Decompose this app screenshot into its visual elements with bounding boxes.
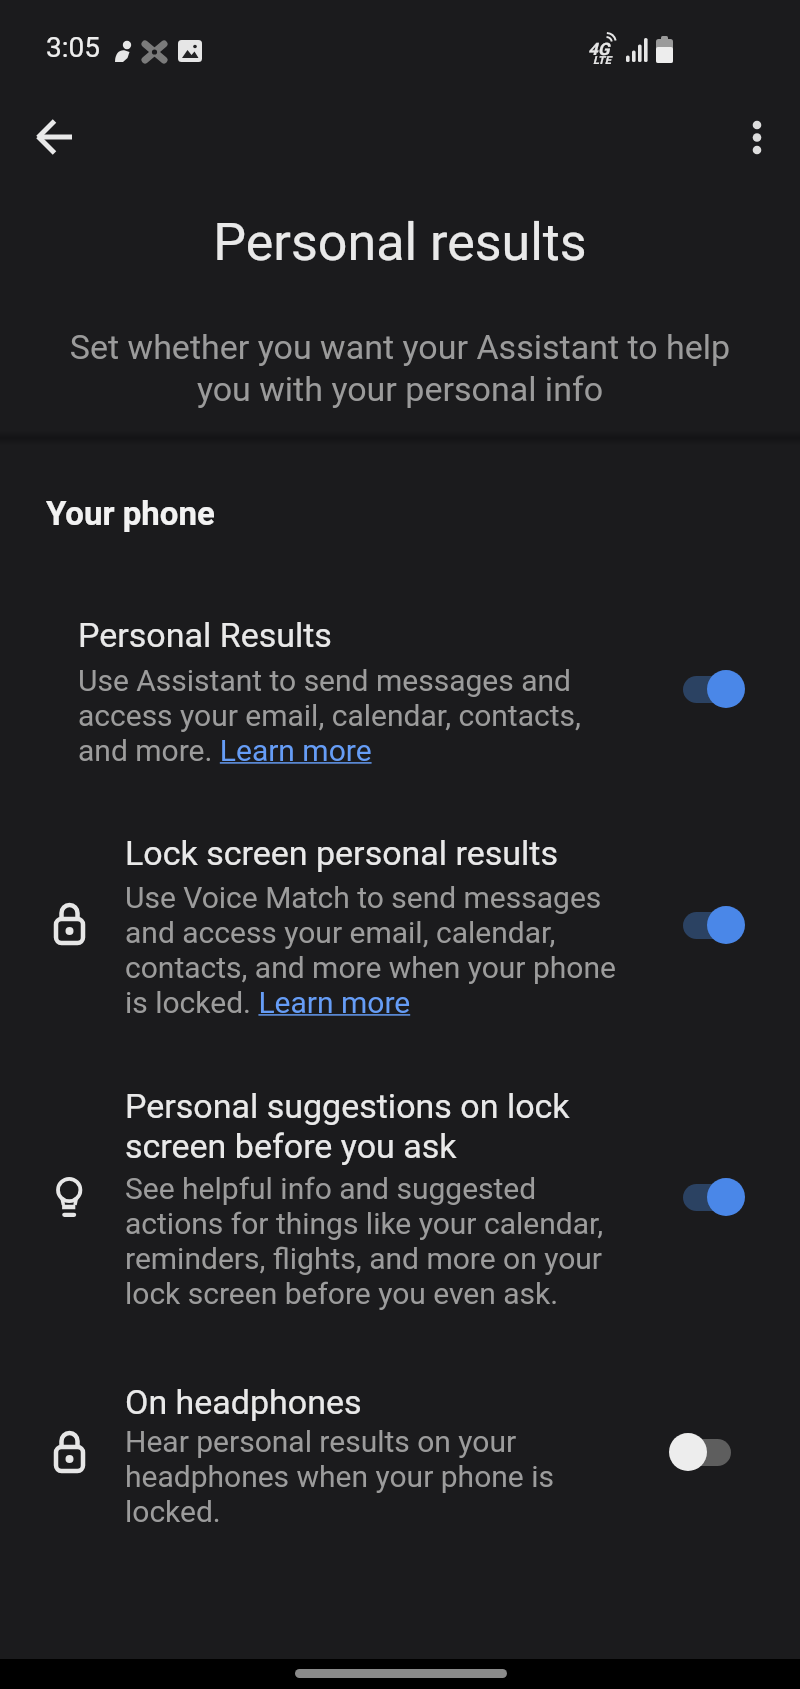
staticText: Hear personal results on your headphones… xyxy=(125,1424,554,1529)
staticText: On headphones xyxy=(125,1382,362,1422)
staticText: 4G xyxy=(588,39,610,59)
staticText: Lock screen personal results xyxy=(125,833,559,873)
staticText: Personal Results xyxy=(78,615,332,655)
staticText: Personal suggestions on lock screen befo… xyxy=(125,1086,570,1166)
staticText: Personal results xyxy=(0,212,800,273)
button[interactable] xyxy=(681,1178,745,1216)
button[interactable] xyxy=(669,1433,733,1471)
staticText: See helpful info and suggested actions f… xyxy=(125,1171,604,1311)
staticText: Use Assistant to send messages and acces… xyxy=(78,663,581,768)
button[interactable] xyxy=(681,670,745,708)
staticText: LTE xyxy=(593,54,611,67)
button[interactable] xyxy=(33,115,77,159)
button[interactable] xyxy=(681,906,745,944)
button[interactable]: On headphones xyxy=(0,1370,800,1550)
button[interactable]: Personal Results xyxy=(0,600,800,780)
button[interactable]: Lock screen personal results xyxy=(0,820,800,1030)
staticText: 3:05 xyxy=(46,31,100,64)
button[interactable] xyxy=(735,110,779,166)
staticText: Your phone xyxy=(46,494,215,533)
button[interactable]: Personal suggestions on lock screen befo… xyxy=(0,1075,800,1310)
staticText: Set whether you want your Assistant to h… xyxy=(0,326,800,410)
staticText: Use Voice Match to send messages and acc… xyxy=(125,880,616,1020)
